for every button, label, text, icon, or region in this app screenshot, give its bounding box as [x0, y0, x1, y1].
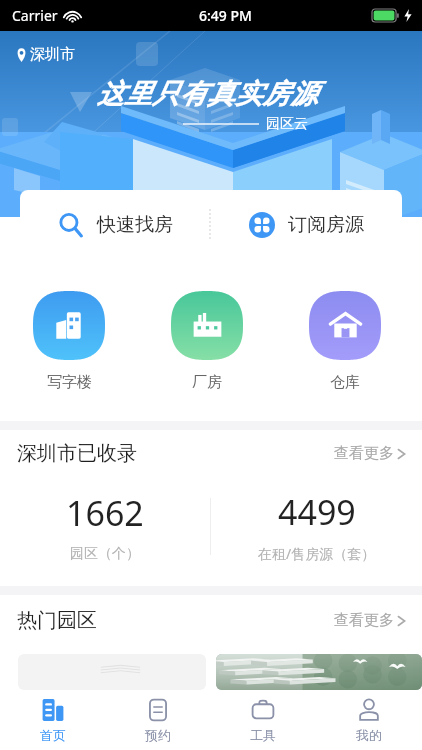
button[interactable]: 写字楼 [33, 291, 105, 392]
button[interactable]: 深圳市 [16, 45, 75, 64]
staticText: 这里只有真实房源 [97, 77, 318, 111]
staticText: 1662 [66, 490, 144, 536]
staticText: 预约 [145, 727, 171, 743]
staticText: 6:49 PM [199, 6, 252, 25]
button[interactable]: 厂房 [171, 291, 243, 392]
button[interactable]: 预约 [105, 690, 210, 750]
button[interactable]: 工具 [210, 690, 316, 750]
button[interactable]: 订阅房源 [211, 190, 402, 260]
staticText: 订阅房源 [288, 213, 364, 237]
button[interactable]: 仓库 [309, 291, 381, 392]
button[interactable]: 我的 [316, 690, 422, 750]
staticText: 我的 [356, 727, 382, 743]
button[interactable]: 查看更多 [334, 611, 406, 630]
staticText: 热门园区 [17, 608, 97, 633]
staticText: 查看更多 [334, 611, 394, 630]
button[interactable]: 快速找房 [20, 190, 210, 260]
staticText: 快速找房 [97, 213, 173, 237]
staticText: 4499 [278, 489, 356, 535]
staticText: 厂房 [192, 373, 222, 392]
staticText: 首页 [40, 727, 66, 743]
button[interactable]: 查看更多 [334, 444, 406, 463]
staticText: 园区（个） [70, 545, 140, 563]
button[interactable]: 1662 [0, 490, 210, 563]
button[interactable]: 4499 [211, 489, 422, 563]
staticText: 在租/售房源（套） [258, 544, 376, 563]
staticText: 仓库 [330, 373, 360, 392]
staticText: 查看更多 [334, 444, 394, 463]
staticText: 园区云 [266, 115, 308, 133]
staticText: 深圳市已收录 [17, 441, 137, 466]
button[interactable] [216, 654, 422, 690]
staticText: 深圳市 [30, 45, 75, 64]
button[interactable]: 首页 [0, 690, 105, 750]
staticText: 工具 [250, 727, 276, 743]
staticText: Carrier [12, 6, 58, 25]
staticText: 写字楼 [47, 373, 92, 392]
